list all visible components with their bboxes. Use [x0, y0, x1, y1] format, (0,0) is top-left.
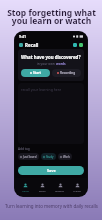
staticText: Recall: [39, 189, 46, 192]
staticText: Recording: [60, 71, 76, 75]
staticText: Turn learning into memory with daily rec…: [5, 203, 98, 209]
staticText: Recall: [25, 42, 39, 48]
staticText: Save: [47, 168, 56, 173]
button[interactable]: recall your learning here: [18, 83, 84, 144]
staticText: What have you discovered?: [21, 54, 81, 60]
staticText: Home: [22, 189, 29, 192]
button[interactable]: Home: [17, 183, 33, 192]
staticText: in your own: [37, 62, 56, 66]
button[interactable]: Start: [21, 69, 50, 77]
staticText: Insights: [55, 189, 65, 192]
button[interactable]: Insights: [52, 183, 68, 192]
staticText: Stop forgetting what you learn or watch: [7, 7, 96, 27]
staticText: Work: [63, 155, 70, 159]
staticText: words: [56, 62, 66, 66]
staticText: Add tag: [18, 147, 30, 151]
button[interactable]: Recording: [52, 69, 81, 77]
staticText: Study: [46, 155, 54, 159]
staticText: Just Saved: [23, 155, 37, 159]
button[interactable]: Activity: [69, 183, 85, 192]
staticText: Activity: [73, 189, 82, 192]
staticText: recall your learning here: [21, 87, 62, 92]
button[interactable]: Study: [41, 153, 56, 160]
button[interactable]: Save: [18, 166, 84, 175]
button[interactable]: Just Saved: [18, 153, 39, 160]
button[interactable]: Work: [58, 153, 72, 160]
staticText: Start: [33, 71, 41, 75]
staticText: 9:41: [19, 34, 26, 39]
button[interactable]: Recall: [34, 183, 50, 192]
